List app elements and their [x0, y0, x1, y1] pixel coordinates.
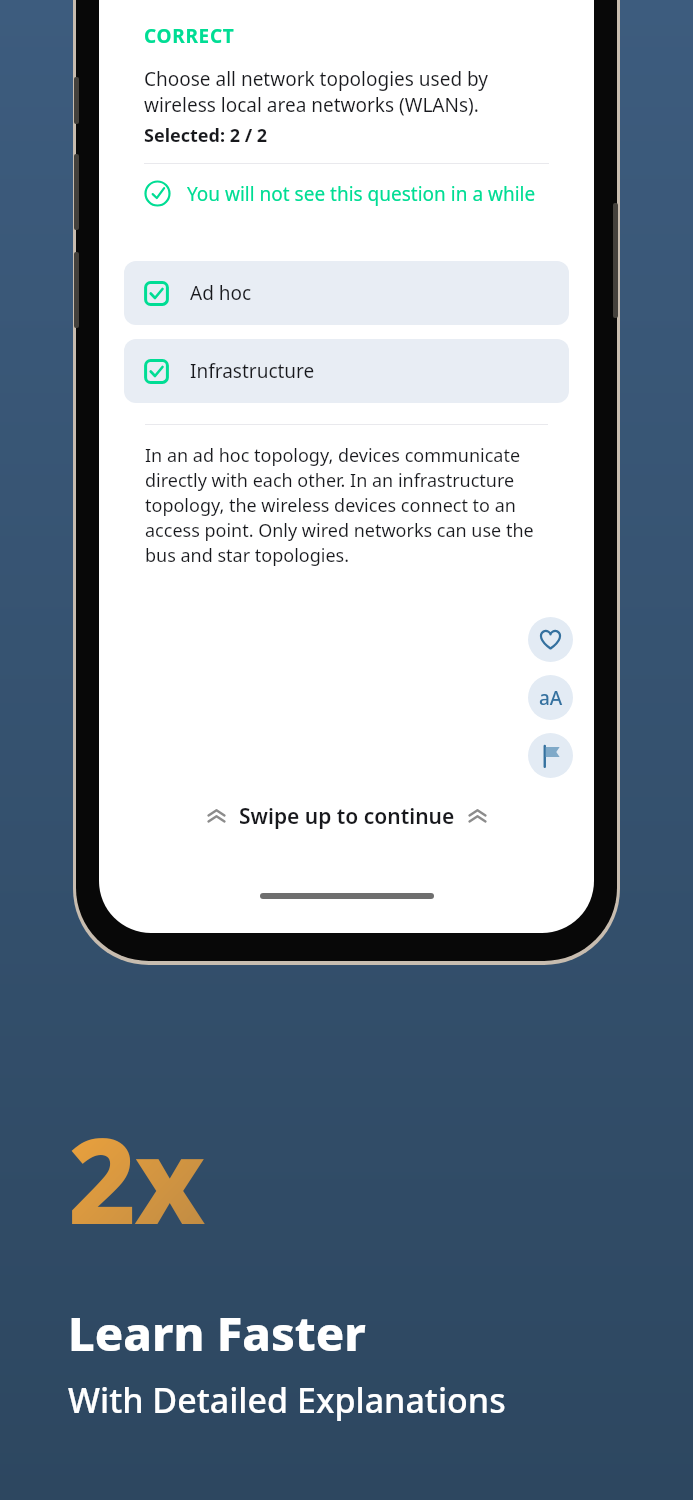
staticText: CORRECT	[144, 23, 235, 49]
staticText: In an ad hoc topology, devices communica…	[145, 443, 548, 568]
button[interactable]: Swipe up to continue	[193, 794, 501, 839]
staticText: Selected: 2 / 2	[144, 123, 268, 148]
button[interactable]: Report	[528, 733, 573, 778]
staticText: Swipe up to continue	[239, 802, 455, 831]
staticText: aA	[539, 685, 563, 711]
staticText: Choose all network topologies used by wi…	[144, 66, 549, 118]
staticText: You will not see this question in a whil…	[187, 181, 536, 207]
button[interactable]: Infrastructure	[124, 339, 569, 403]
staticText: Infrastructure	[190, 358, 315, 384]
staticText: Learn Faster	[68, 1301, 366, 1365]
button[interactable]: Ad hoc	[124, 261, 569, 325]
staticText: Ad hoc	[190, 280, 252, 306]
staticText: 2x	[68, 1098, 204, 1259]
button[interactable]: Favorite	[528, 617, 573, 662]
staticText: With Detailed Explanations	[68, 1377, 506, 1423]
button[interactable]: Text size	[528, 675, 573, 720]
